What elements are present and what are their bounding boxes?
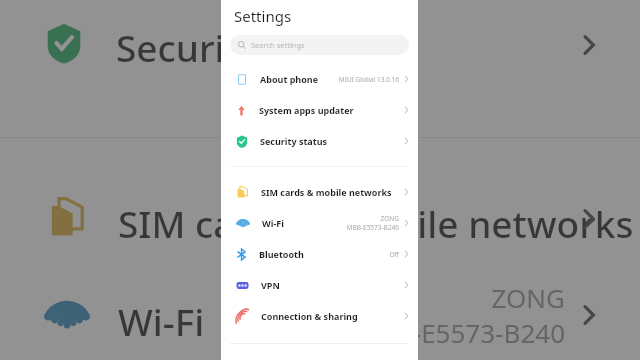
staticText: MIUI Global 13.0.16 — [338, 75, 399, 84]
staticText: SIM cards & mobile networks — [118, 198, 634, 248]
staticText: MBB-E5573-B240 — [346, 223, 399, 232]
staticText: ZONG — [380, 214, 399, 223]
button[interactable]: Bluetooth — [221, 241, 418, 267]
button[interactable]: Security status — [221, 128, 418, 154]
staticText: Security — [116, 22, 259, 72]
staticText: About phone — [260, 73, 319, 85]
staticText: ZONG — [491, 280, 565, 315]
button[interactable]: VPN — [221, 272, 418, 298]
button[interactable]: SIM cards & mobile networks — [221, 179, 418, 205]
staticText: Off — [389, 250, 399, 259]
staticText: -E5573-B240 — [412, 315, 565, 350]
staticText: Search settings — [251, 40, 305, 50]
button[interactable]: Wi-Fi — [221, 210, 418, 236]
staticText: System apps updater — [259, 104, 354, 116]
staticText: Wi-Fi — [262, 217, 284, 229]
button[interactable]: About phone — [221, 66, 418, 92]
staticText: Bluetooth — [259, 248, 304, 260]
staticText: SIM cards & mobile networks — [261, 186, 392, 198]
button[interactable]: Search settings — [230, 35, 409, 55]
staticText: Wi-Fi — [118, 296, 205, 346]
staticText: VPN — [261, 279, 280, 291]
button[interactable]: Connection & sharing — [221, 303, 418, 329]
staticText: Settings — [234, 6, 292, 26]
staticText: Connection & sharing — [261, 310, 358, 322]
button[interactable]: System apps updater — [221, 97, 418, 123]
staticText: Security status — [260, 135, 328, 147]
